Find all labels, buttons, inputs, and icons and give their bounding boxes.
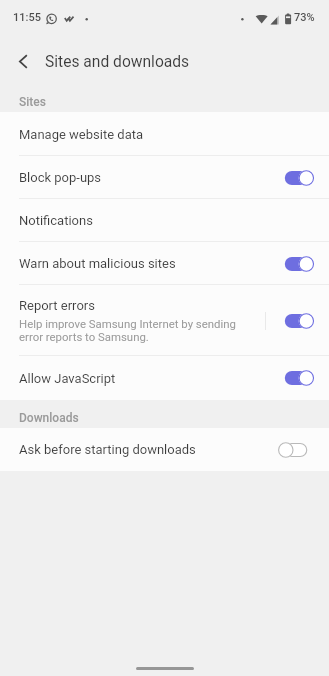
button[interactable]: Manage website data: [0, 112, 329, 156]
button[interactable]: Allow JavaScript: [0, 356, 329, 400]
staticText: Allow JavaScript: [19, 371, 116, 386]
button[interactable]: Switch on: [278, 169, 315, 187]
staticText: Notifications: [19, 213, 93, 228]
staticText: Warn about malicious sites: [19, 256, 176, 271]
staticText: Sites: [19, 95, 46, 109]
staticText: Help improve Samsung Internet by sending…: [19, 317, 236, 344]
staticText: 73%: [294, 11, 315, 24]
button[interactable]: Notifications: [0, 199, 329, 242]
button[interactable]: Block pop-ups: [0, 156, 329, 199]
staticText: Block pop-ups: [19, 170, 102, 185]
button[interactable]: Navigate up: [5, 43, 41, 79]
staticText: Manage website data: [19, 127, 144, 142]
button[interactable]: Warn about malicious sites: [0, 242, 329, 285]
staticText: Downloads: [19, 411, 79, 425]
staticText: 11:55: [13, 11, 41, 24]
button[interactable]: Switch off: [278, 441, 315, 459]
button[interactable]: Switch on: [278, 369, 315, 387]
staticText: Sites and downloads: [45, 53, 190, 71]
button[interactable]: Ask before starting downloads: [0, 428, 329, 471]
staticText: Ask before starting downloads: [19, 442, 196, 457]
button[interactable]: Switch on: [278, 312, 315, 330]
staticText: Report errors: [19, 298, 95, 313]
button[interactable]: Report errors: [0, 285, 329, 356]
button[interactable]: Switch on: [278, 255, 315, 273]
